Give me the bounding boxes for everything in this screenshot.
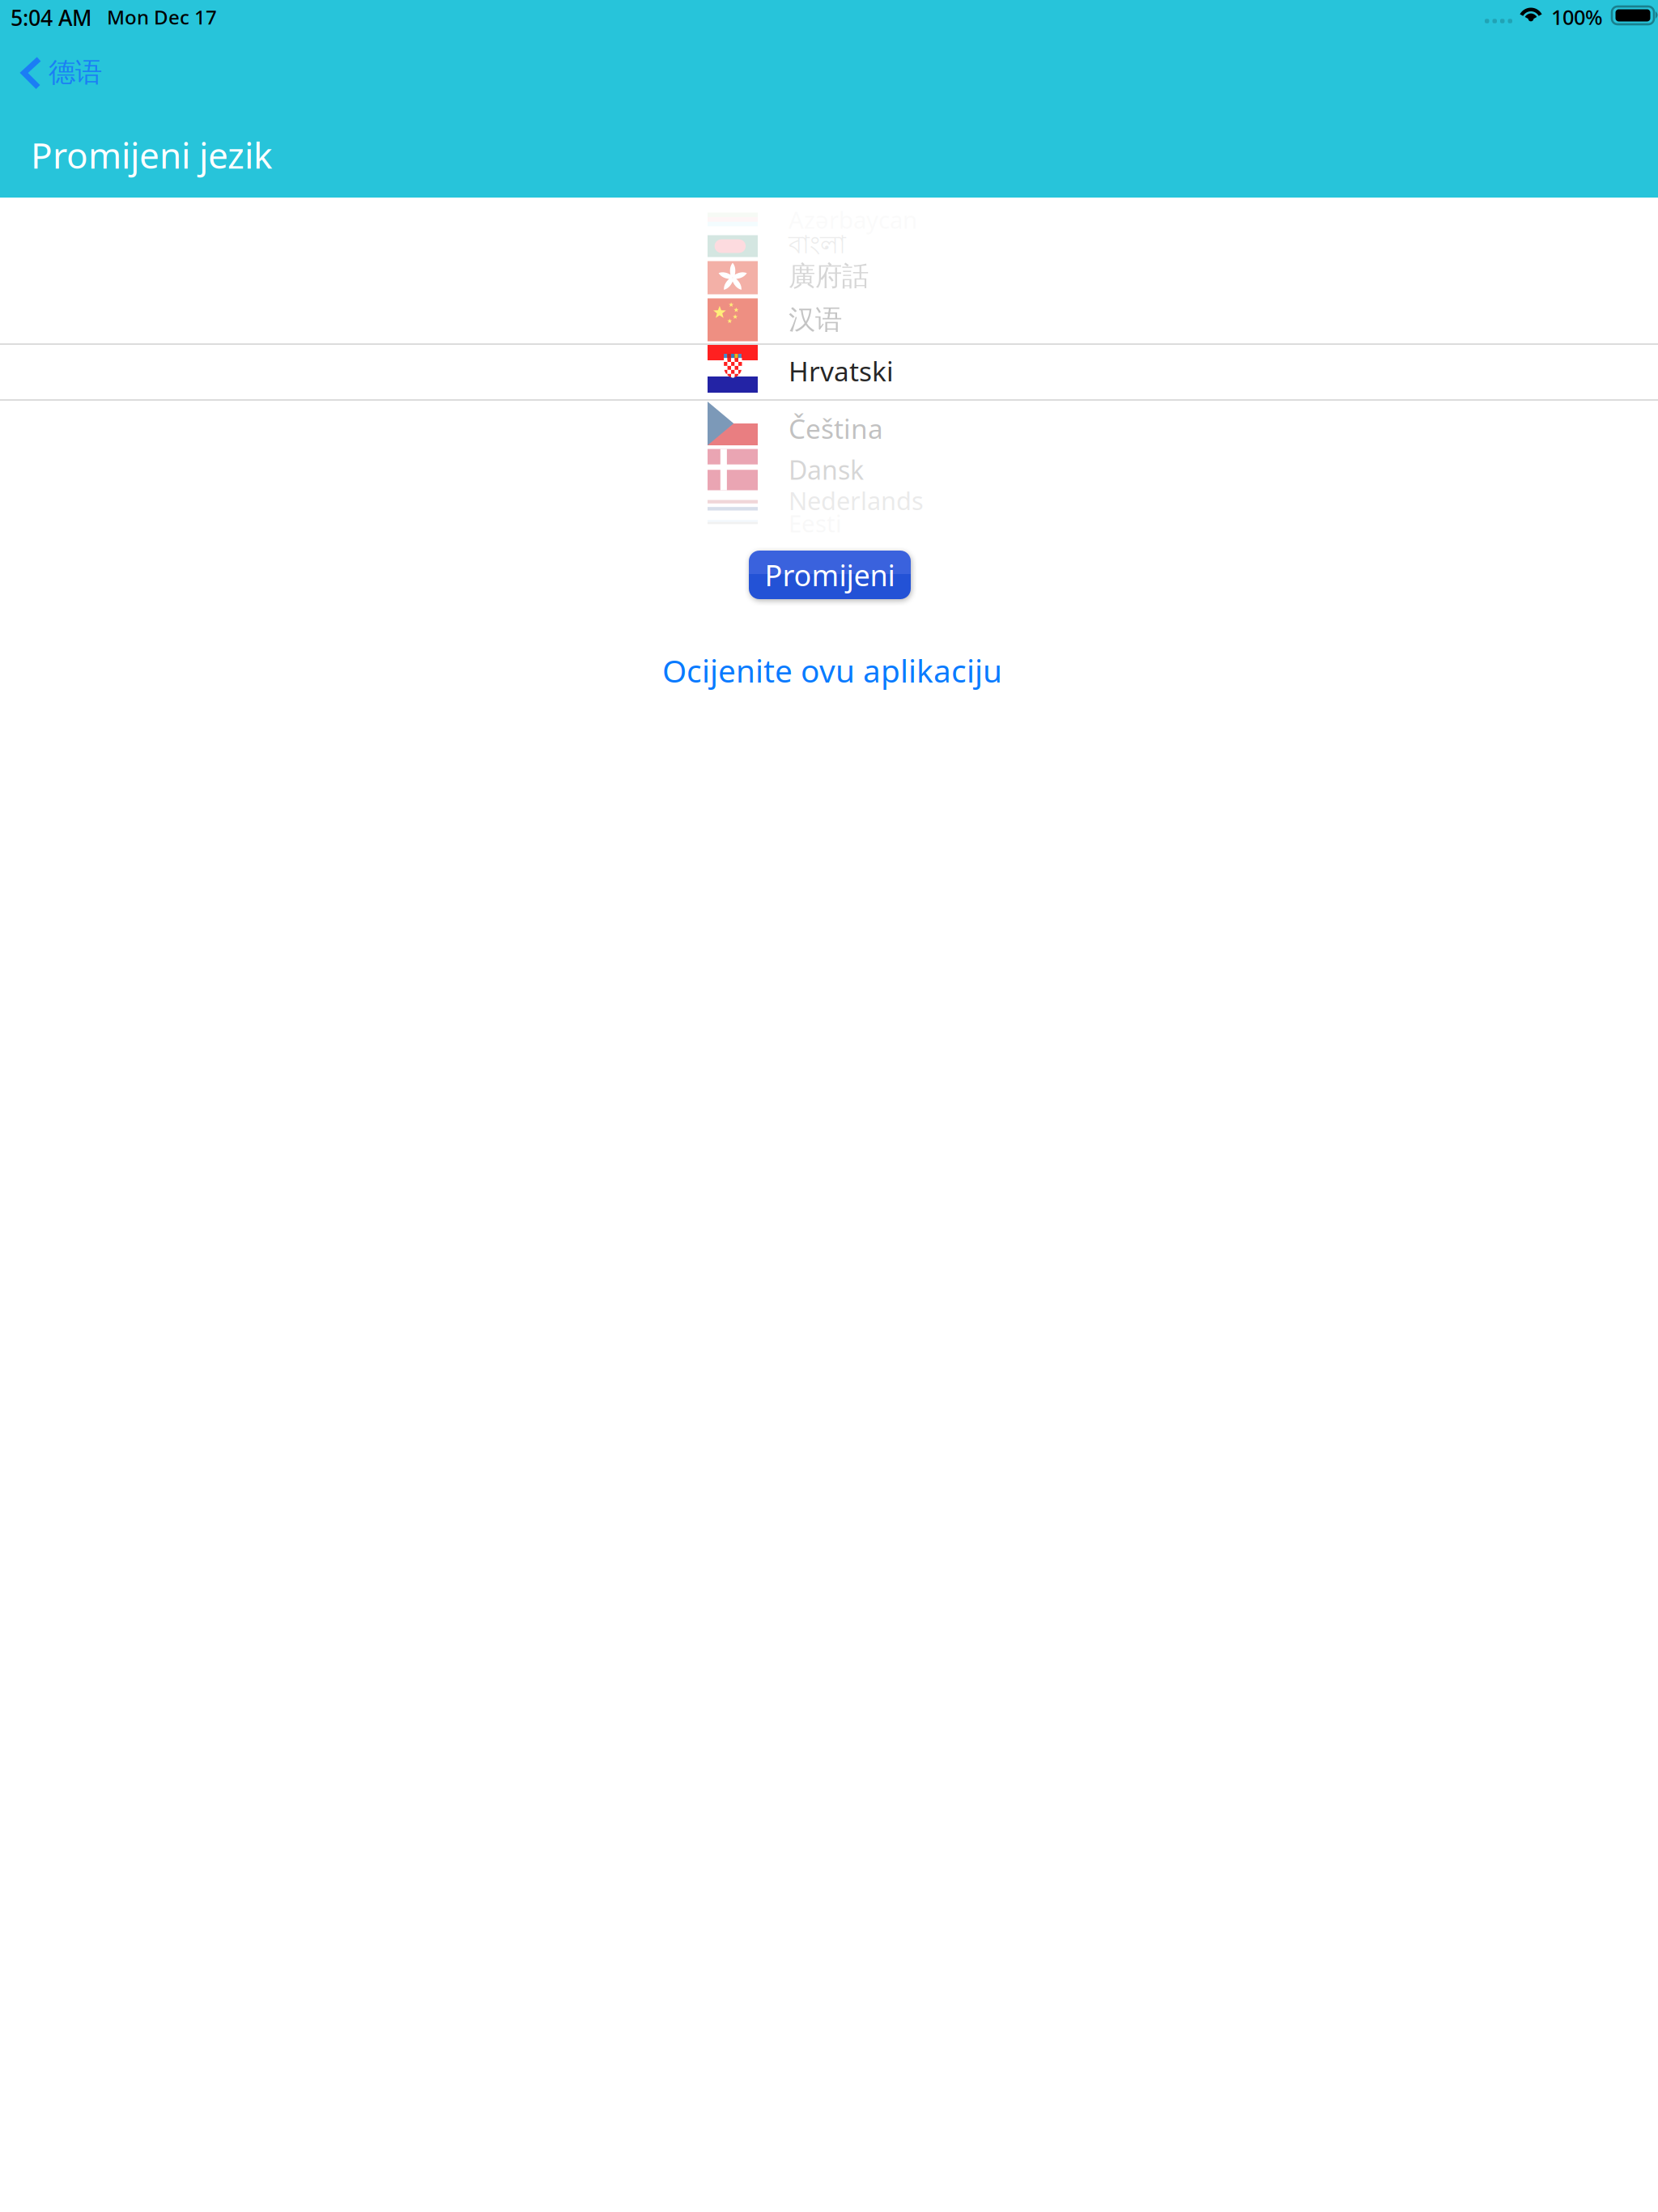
button[interactable]: 汉语 [708,292,1274,347]
button[interactable]: Ocijenite ovu aplikaciju [662,648,1043,693]
button[interactable]: Dansk [708,442,1274,497]
button[interactable]: 廣府話 [708,250,1274,305]
staticText: 5:04 AM [11,3,91,32]
button[interactable]: Promijeni [749,551,911,599]
button[interactable]: Hrvatski [708,341,1274,396]
staticText: Promijeni jezik [31,131,272,178]
button[interactable]: Eesti [708,496,1274,551]
button[interactable]: Nederlands [708,478,1274,533]
button[interactable]: Azərbaycan [708,192,1274,247]
button[interactable]: Back to 德语 [0,48,186,96]
staticText: 廣府話 [789,259,869,293]
staticText: Hrvatski [789,353,894,389]
staticText: বাংলা [789,229,846,263]
staticText: Promijeni [765,556,895,594]
button[interactable]: Čeština [708,396,1274,451]
staticText: Ocijenite ovu aplikaciju [662,650,1002,691]
staticText: Čeština [789,410,883,446]
staticText: Mon Dec 17 [107,4,217,30]
button[interactable]: বাংলা [708,219,1274,274]
staticText: 汉语 [789,303,842,336]
staticText: Dansk [789,452,864,487]
staticText: 100% [1551,3,1603,30]
staticText: Eesti [789,507,842,539]
staticText: Nederlands [789,484,924,517]
staticText: 德语 [49,56,102,89]
